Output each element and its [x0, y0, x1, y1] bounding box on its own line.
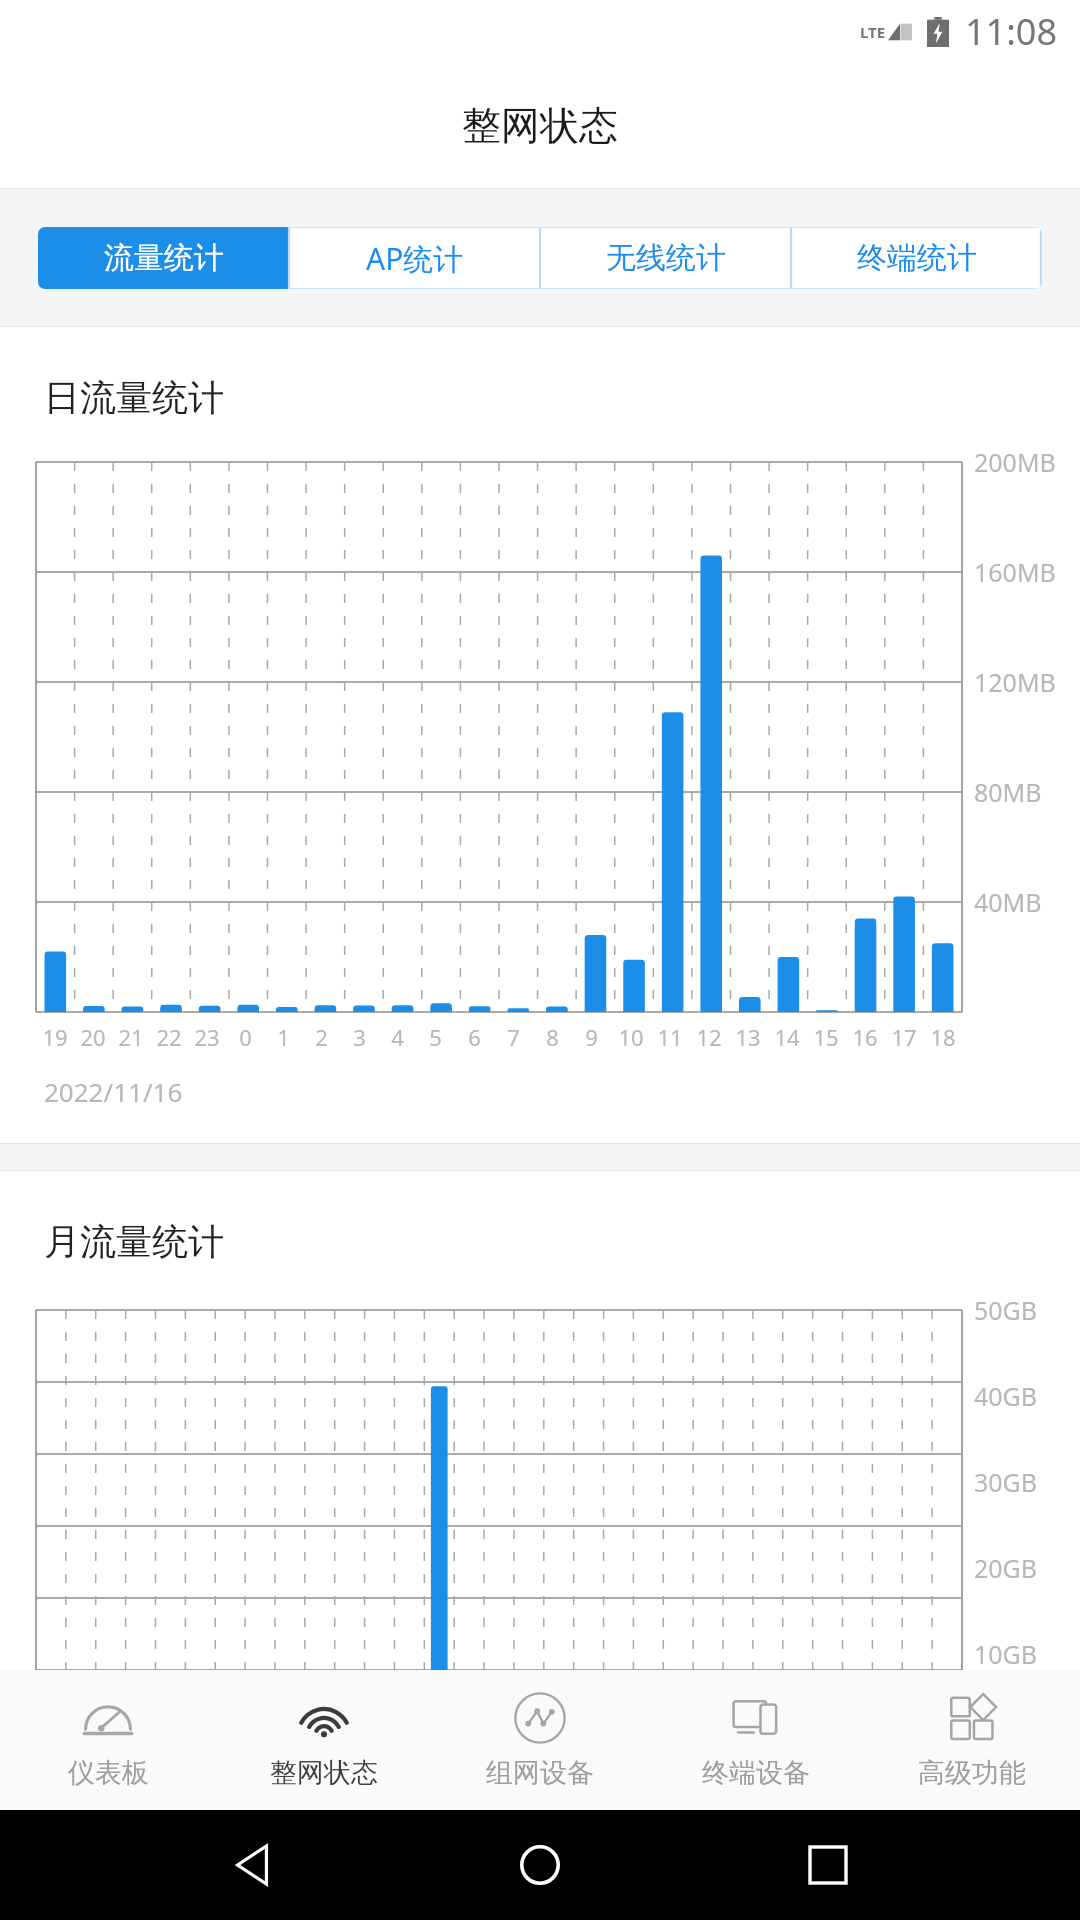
- staticText: 13: [735, 1022, 761, 1052]
- staticText: 14: [774, 1022, 800, 1052]
- staticText: 40MB: [974, 885, 1042, 919]
- staticText: 终端统计: [857, 239, 977, 277]
- staticText: 9: [585, 1022, 598, 1052]
- staticText: 30GB: [974, 1465, 1038, 1499]
- staticText: 40GB: [974, 1379, 1038, 1413]
- button[interactable]: 整网状态: [216, 1670, 432, 1810]
- staticText: 0: [239, 1022, 252, 1052]
- staticText: 8: [546, 1022, 559, 1052]
- staticText: 18: [930, 1022, 956, 1052]
- staticText: 2: [315, 1022, 328, 1052]
- staticText: 16: [852, 1022, 878, 1052]
- staticText: 10GB: [974, 1637, 1038, 1671]
- staticText: 整网状态: [270, 1756, 378, 1790]
- staticText: 终端设备: [702, 1756, 810, 1790]
- staticText: 12: [696, 1022, 722, 1052]
- staticText: 11: [657, 1022, 683, 1052]
- staticText: LTE: [860, 22, 886, 42]
- staticText: 4: [391, 1022, 404, 1052]
- staticText: 5: [429, 1022, 442, 1052]
- staticText: 3: [353, 1022, 366, 1052]
- button[interactable]: 高级功能: [864, 1670, 1080, 1810]
- staticText: 20: [80, 1022, 106, 1052]
- staticText: 2022/11/16: [44, 1074, 183, 1109]
- staticText: 无线统计: [606, 239, 726, 277]
- button[interactable]: Back: [216, 1829, 288, 1901]
- button[interactable]: 终端设备: [648, 1670, 864, 1810]
- staticText: 21: [118, 1022, 144, 1052]
- staticText: 23: [194, 1022, 220, 1052]
- staticText: 19: [42, 1022, 68, 1052]
- staticText: 仪表板: [68, 1756, 149, 1790]
- button[interactable]: 无线统计: [540, 227, 791, 289]
- staticText: 整网状态: [462, 101, 618, 150]
- staticText: 组网设备: [486, 1756, 594, 1790]
- button[interactable]: Home: [504, 1829, 576, 1901]
- staticText: 200MB: [974, 445, 1056, 479]
- staticText: 15: [813, 1022, 839, 1052]
- staticText: 20GB: [974, 1551, 1038, 1585]
- button[interactable]: Recents: [792, 1829, 864, 1901]
- staticText: 流量统计: [104, 239, 224, 277]
- staticText: 50GB: [974, 1293, 1038, 1327]
- staticText: 80MB: [974, 775, 1042, 809]
- staticText: 11:08: [965, 7, 1058, 56]
- button[interactable]: AP统计: [289, 227, 540, 289]
- staticText: 高级功能: [918, 1756, 1026, 1790]
- button[interactable]: 流量统计: [38, 227, 289, 289]
- staticText: 22: [156, 1022, 182, 1052]
- staticText: 6: [468, 1022, 481, 1052]
- staticText: 17: [891, 1022, 917, 1052]
- staticText: 日流量统计: [44, 375, 224, 420]
- staticText: 月流量统计: [44, 1219, 224, 1264]
- button[interactable]: 组网设备: [432, 1670, 648, 1810]
- button[interactable]: 仪表板: [0, 1670, 216, 1810]
- staticText: 10: [618, 1022, 644, 1052]
- staticText: AP统计: [366, 238, 464, 279]
- button[interactable]: 终端统计: [791, 227, 1042, 289]
- staticText: 160MB: [974, 555, 1056, 589]
- staticText: 120MB: [974, 665, 1056, 699]
- staticText: 7: [507, 1022, 520, 1052]
- staticText: 1: [277, 1022, 290, 1052]
